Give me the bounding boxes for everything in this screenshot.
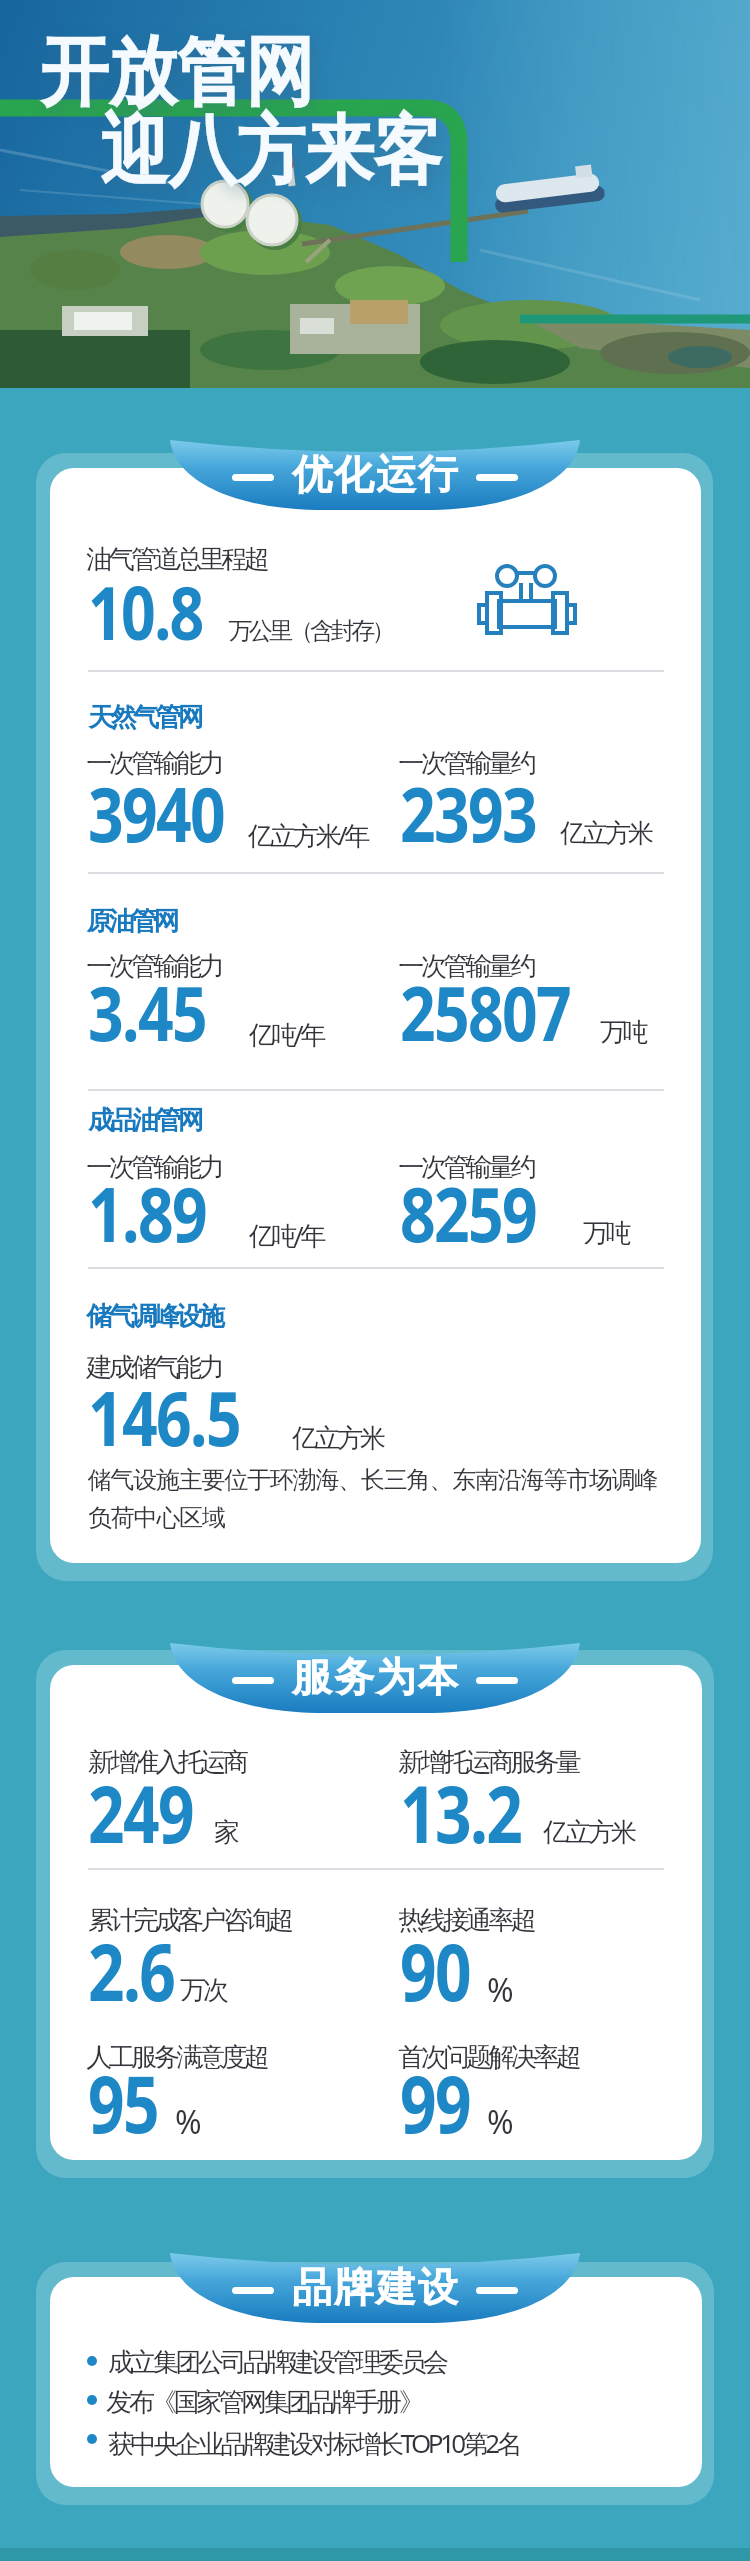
staticText: 家 xyxy=(214,1816,237,1849)
staticText: 1.89 xyxy=(88,1161,206,1265)
staticText: % xyxy=(487,2100,511,2144)
staticText: 发布《国家管网集团品牌手册》 xyxy=(108,2386,423,2419)
button[interactable]: 服务为本 xyxy=(170,1645,580,1709)
staticText: 开放管网 xyxy=(40,25,314,121)
staticText: 储气设施主要位于环渤海、长三角、东南沿海等市场调峰 xyxy=(88,1465,658,1495)
staticText: 一次管输量约 xyxy=(400,747,535,780)
staticText: 25807 xyxy=(400,960,571,1064)
staticText: 2393 xyxy=(400,761,536,865)
staticText: 8259 xyxy=(400,1161,536,1265)
staticText: 亿立方米 xyxy=(562,817,652,850)
staticText: 成品油管网 xyxy=(88,1104,201,1137)
staticText: 万吨 xyxy=(602,1016,647,1049)
staticText: 万公里（含封存） xyxy=(230,616,394,646)
staticText: 品牌建设 xyxy=(291,2262,459,2312)
staticText: 一次管输量约 xyxy=(400,1151,535,1184)
staticText: 天然气管网 xyxy=(88,701,201,734)
staticText: 负荷中心区域 xyxy=(88,1503,225,1533)
button[interactable]: 品牌建设 xyxy=(170,2255,580,2319)
staticText: 249 xyxy=(88,1760,193,1866)
staticText: 13.2 xyxy=(400,1760,521,1866)
staticText: 146.5 xyxy=(88,1365,240,1469)
staticText: 获中央企业品牌建设对标增长TOP10第2名 xyxy=(108,2425,520,2461)
staticText: 建成储气能力 xyxy=(88,1351,223,1384)
staticText: 95 xyxy=(88,2050,158,2156)
staticText: 3.45 xyxy=(88,960,206,1064)
staticText: 热线接通率超 xyxy=(400,1904,535,1937)
staticText: 储气调峰设施 xyxy=(88,1300,223,1333)
staticText: 油气管道总里程超 xyxy=(88,543,268,576)
staticText: 一次管输量约 xyxy=(400,950,535,983)
staticText: 90 xyxy=(400,1918,470,2024)
staticText: 累计完成客户咨询超 xyxy=(88,1904,291,1937)
staticText: % xyxy=(175,2100,199,2144)
staticText: 一次管输能力 xyxy=(88,1151,223,1184)
staticText: 一次管输能力 xyxy=(88,950,223,983)
staticText: 亿吨/年 xyxy=(249,1217,323,1253)
staticText: 服务为本 xyxy=(291,1652,459,1702)
staticText: 3940 xyxy=(88,761,224,865)
button[interactable]: 优化运行 xyxy=(170,442,580,506)
staticText: 亿立方米/年 xyxy=(248,817,367,853)
staticText: 亿立方米 xyxy=(294,1422,384,1455)
staticText: 原油管网 xyxy=(88,905,178,938)
staticText: 万吨 xyxy=(585,1217,630,1250)
staticText: 一次管输能力 xyxy=(88,747,223,780)
staticText: 新增准入托运商 xyxy=(88,1746,246,1779)
staticText: % xyxy=(487,1968,511,2012)
staticText: 成立集团公司品牌建设管理委员会 xyxy=(108,2346,446,2379)
staticText: 万次 xyxy=(182,1974,227,2007)
staticText: 亿立方米 xyxy=(545,1816,635,1849)
staticText: 人工服务满意度超 xyxy=(88,2041,268,2074)
staticText: 迎八方来客 xyxy=(100,104,442,200)
staticText: 首次问题解决率超 xyxy=(400,2041,580,2074)
staticText: 2.6 xyxy=(88,1918,175,2024)
staticText: 新增托运商服务量 xyxy=(400,1746,580,1779)
staticText: 优化运行 xyxy=(291,449,459,499)
staticText: 亿吨/年 xyxy=(249,1016,323,1052)
staticText: 99 xyxy=(400,2050,470,2156)
staticText: 10.8 xyxy=(88,561,203,662)
